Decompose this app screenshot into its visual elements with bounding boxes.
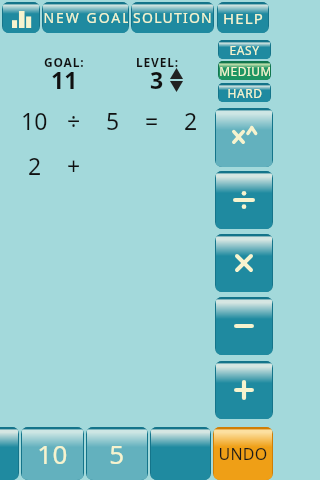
button[interactable]: Subtract bbox=[216, 297, 272, 355]
button[interactable]: UNDO bbox=[214, 427, 272, 480]
staticText: 2 bbox=[28, 150, 42, 181]
staticText: SOLUTION bbox=[133, 8, 213, 27]
button[interactable]: HELP bbox=[218, 2, 268, 33]
staticText: UNDO bbox=[218, 443, 268, 465]
staticText: 2 bbox=[184, 105, 198, 136]
staticText: 5 bbox=[109, 436, 125, 471]
button[interactable]: Divide bbox=[216, 171, 272, 229]
staticText: MEDIUM bbox=[219, 63, 270, 79]
button[interactable]: 10 bbox=[22, 427, 83, 480]
button[interactable]: 5 bbox=[87, 427, 147, 480]
staticText: 11 bbox=[51, 64, 78, 95]
button[interactable]: EASY bbox=[219, 40, 270, 59]
staticText: GOAL: bbox=[44, 54, 85, 70]
staticText: ÷ bbox=[67, 105, 81, 136]
button[interactable]: Empty slot bbox=[151, 427, 210, 480]
staticText: 5 bbox=[106, 105, 120, 136]
staticText: 10 bbox=[37, 436, 68, 471]
button[interactable]: Slot bbox=[0, 427, 18, 480]
staticText: 3 bbox=[150, 64, 164, 95]
staticText: EASY bbox=[229, 42, 260, 58]
button[interactable]: SOLUTION bbox=[132, 2, 213, 33]
staticText: LEVEL: bbox=[136, 54, 179, 70]
button[interactable]: Multiply bbox=[216, 234, 272, 292]
button[interactable]: Add bbox=[216, 361, 272, 419]
button[interactable]: MEDIUM bbox=[219, 61, 270, 80]
staticText: + bbox=[67, 150, 81, 181]
button[interactable]: Power bbox=[216, 108, 272, 167]
staticText: HARD bbox=[227, 85, 263, 101]
staticText: = bbox=[145, 105, 159, 136]
button[interactable]: Statistics bbox=[3, 2, 39, 33]
button[interactable]: HARD bbox=[219, 83, 270, 102]
staticText: NEW GOAL bbox=[43, 8, 128, 27]
button[interactable]: Change level bbox=[170, 68, 183, 92]
button[interactable]: NEW GOAL bbox=[43, 2, 128, 33]
staticText: 10 bbox=[21, 105, 48, 136]
staticText: HELP bbox=[223, 8, 264, 28]
